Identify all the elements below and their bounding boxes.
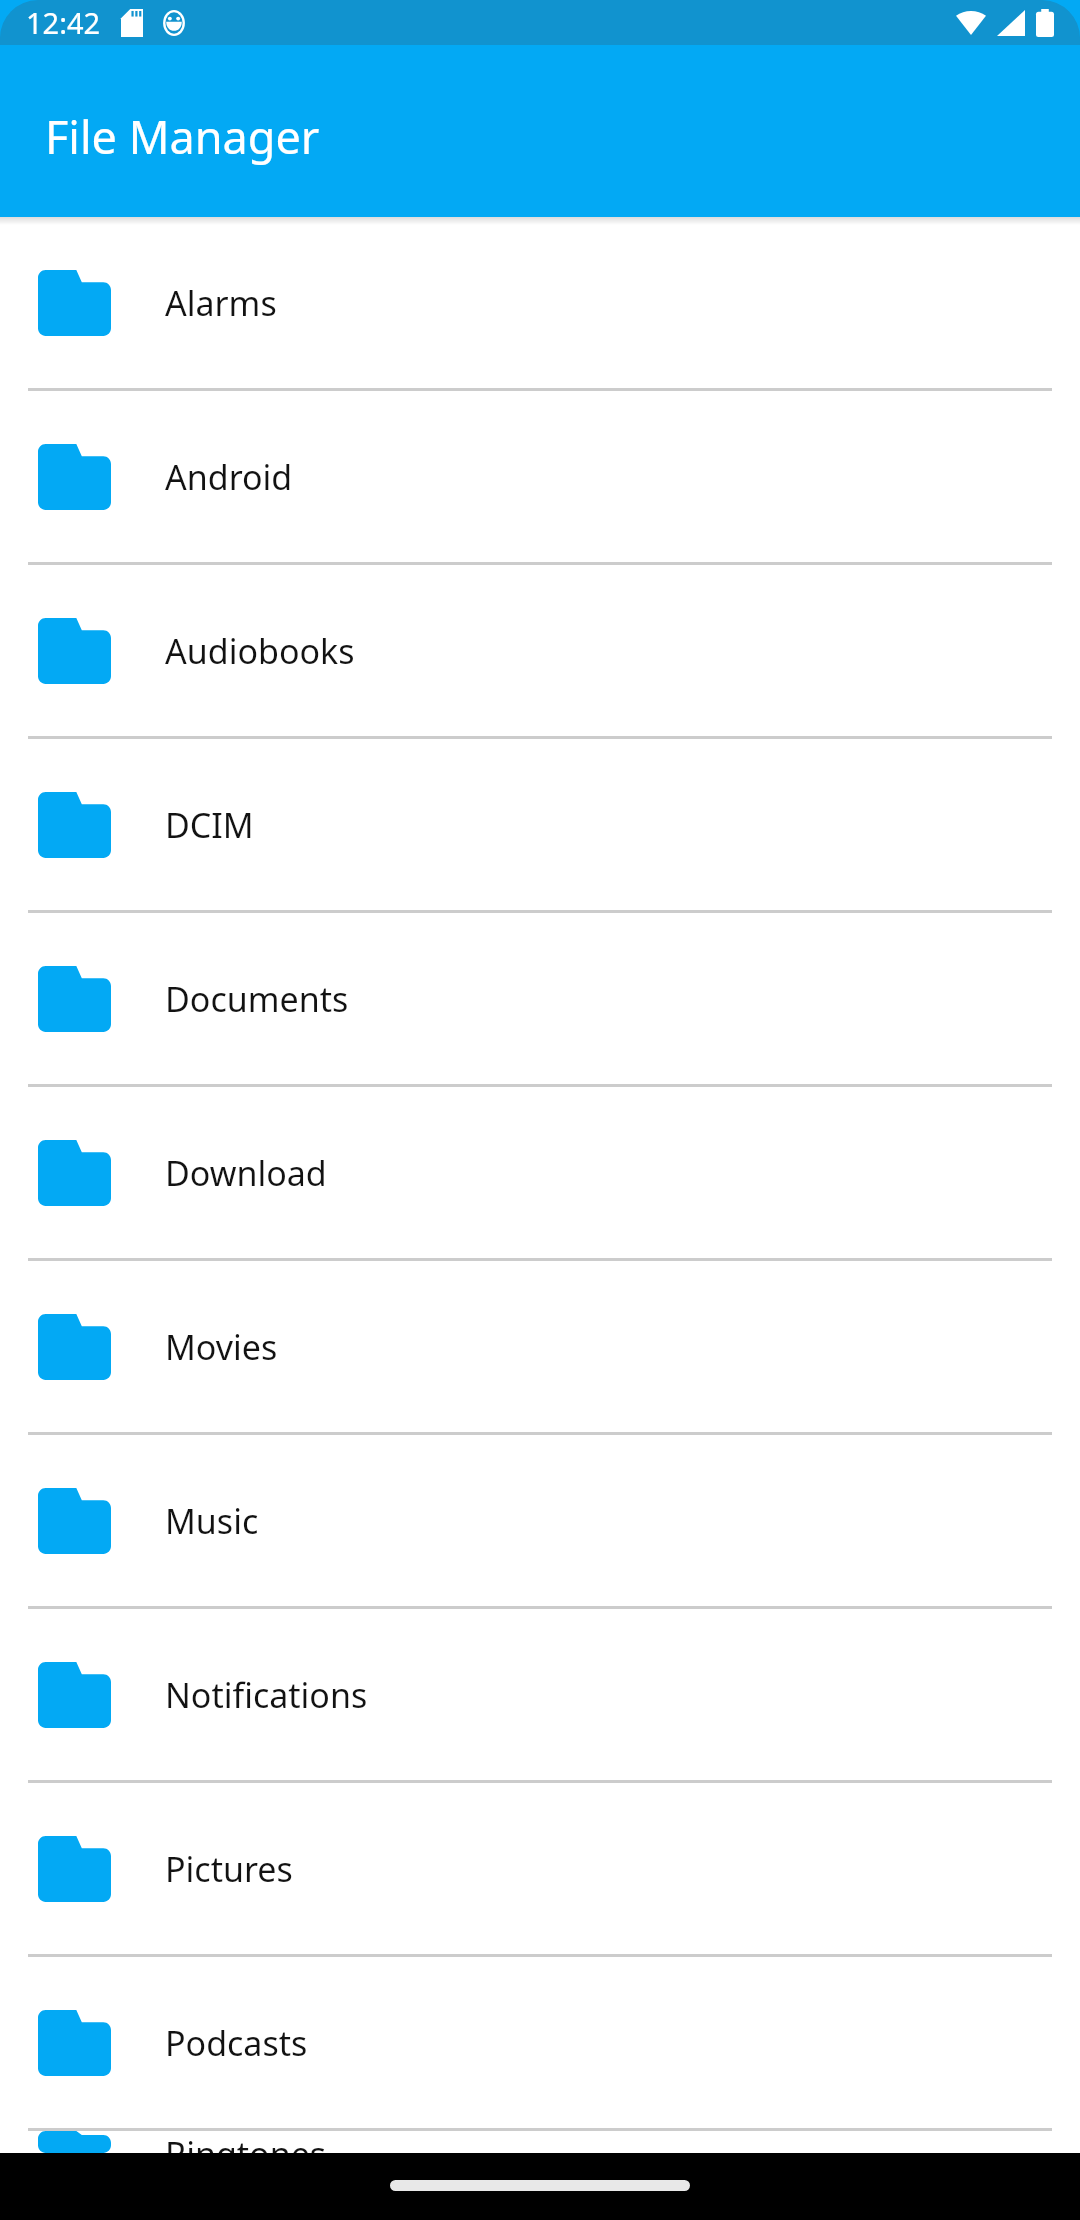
- button[interactable]: Pictures: [0, 1783, 1080, 1957]
- staticText: Android: [165, 454, 293, 500]
- button[interactable]: Podcasts: [0, 1957, 1080, 2131]
- staticText: Movies: [165, 1324, 278, 1370]
- staticText: Podcasts: [165, 2020, 308, 2066]
- staticText: Music: [165, 1498, 259, 1544]
- button[interactable]: Alarms: [0, 217, 1080, 391]
- staticText: Download: [165, 1150, 327, 1196]
- staticText: Documents: [165, 976, 349, 1022]
- button[interactable]: Notifications: [0, 1609, 1080, 1783]
- staticText: Ringtones: [165, 2131, 327, 2153]
- button[interactable]: Ringtones: [0, 2131, 1080, 2153]
- staticText: Alarms: [165, 280, 277, 326]
- staticText: Notifications: [165, 1672, 368, 1718]
- button[interactable]: Download: [0, 1087, 1080, 1261]
- staticText: DCIM: [165, 802, 254, 848]
- staticText: File Manager: [45, 106, 320, 167]
- button[interactable]: Audiobooks: [0, 565, 1080, 739]
- button[interactable]: DCIM: [0, 739, 1080, 913]
- button[interactable]: Android: [0, 391, 1080, 565]
- button[interactable]: Movies: [0, 1261, 1080, 1435]
- staticText: Pictures: [165, 1846, 293, 1892]
- staticText: 12:42: [26, 3, 101, 42]
- staticText: Audiobooks: [165, 628, 355, 674]
- button[interactable]: Music: [0, 1435, 1080, 1609]
- button[interactable]: Documents: [0, 913, 1080, 1087]
